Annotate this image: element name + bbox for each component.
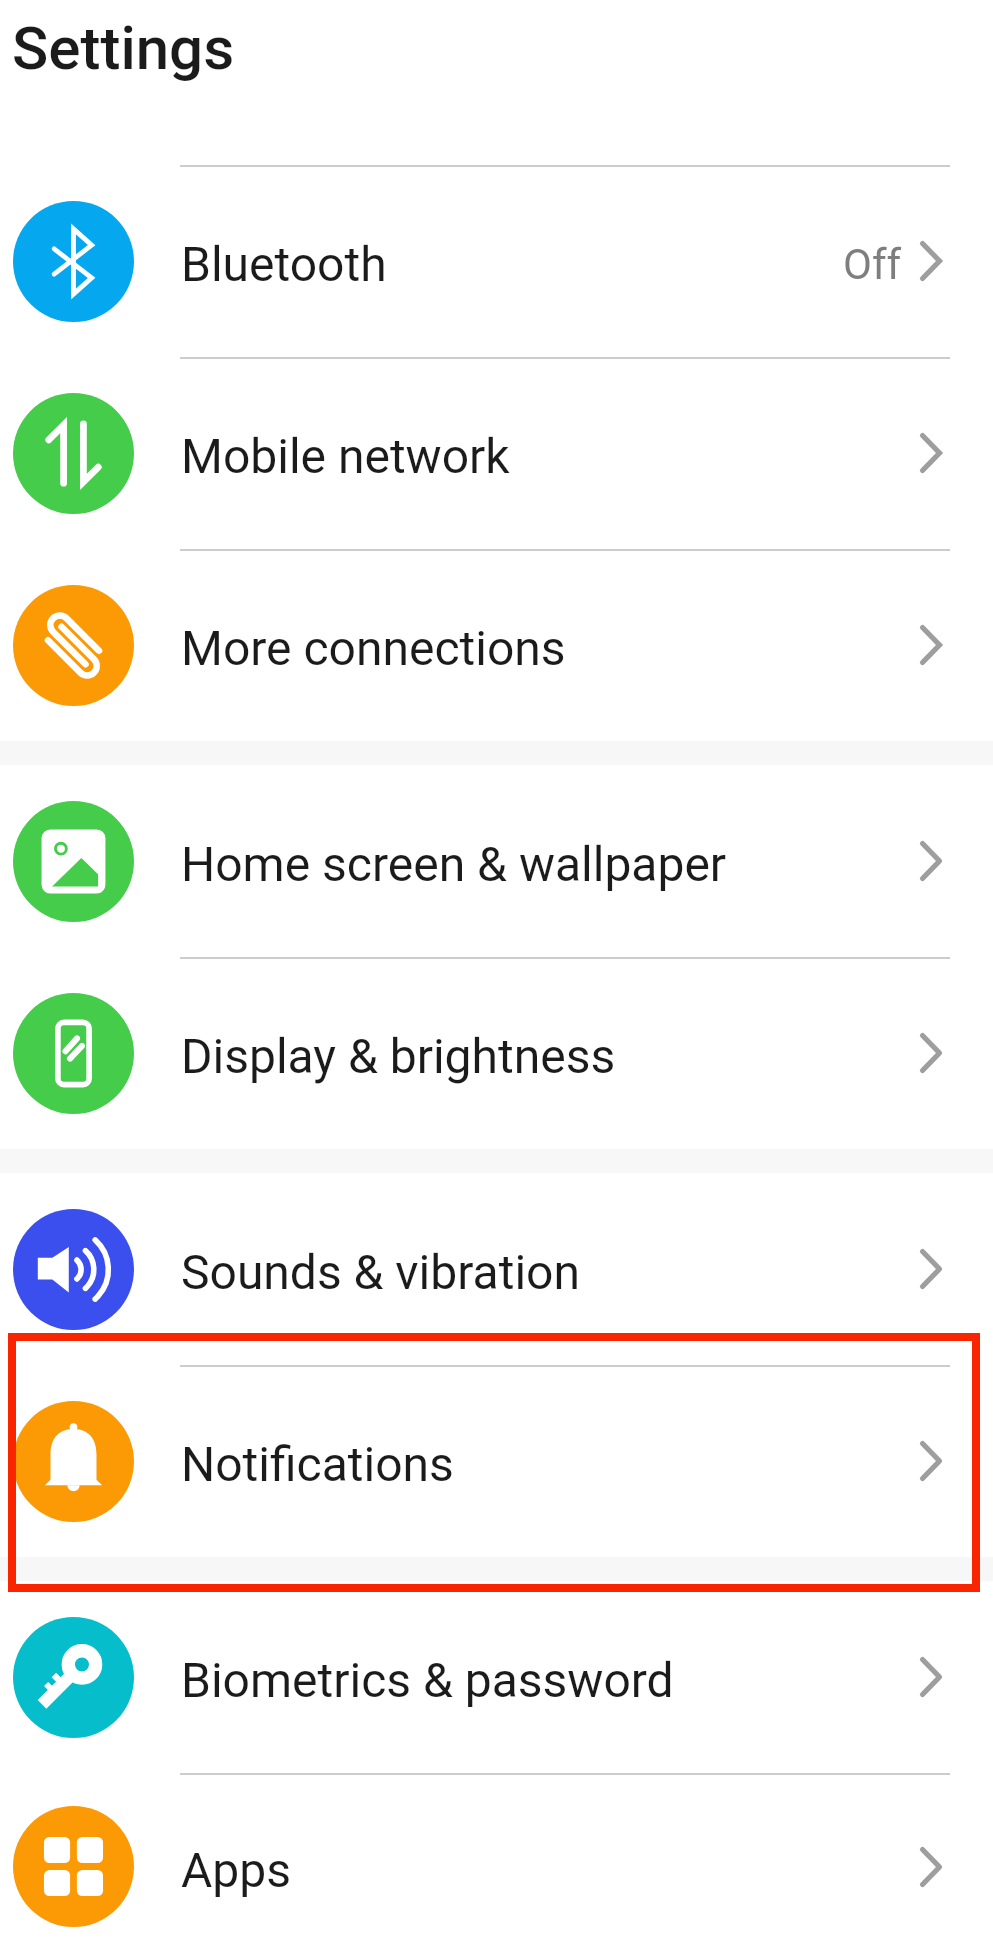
button[interactable]: Mobile network bbox=[0, 357, 993, 549]
staticText: Biometrics & password bbox=[181, 1652, 674, 1708]
staticText: Apps bbox=[181, 1842, 291, 1898]
staticText: Settings bbox=[12, 13, 235, 83]
button[interactable]: Home screen & wallpaper bbox=[0, 765, 993, 957]
other: Open Apps bbox=[920, 1847, 942, 1887]
staticText: Mobile network bbox=[181, 428, 510, 484]
other: Open Mobile network bbox=[920, 433, 942, 473]
staticText: Display & brightness bbox=[181, 1028, 616, 1084]
staticText: Notifications bbox=[181, 1436, 454, 1492]
button[interactable]: Notifications bbox=[0, 1365, 993, 1557]
button[interactable]: Biometrics & password bbox=[0, 1581, 993, 1773]
staticText: Bluetooth bbox=[181, 236, 387, 292]
staticText: Sounds & vibration bbox=[181, 1244, 580, 1300]
other: Open Display & brightness bbox=[920, 1033, 942, 1073]
staticText: Off bbox=[843, 240, 902, 289]
staticText: Home screen & wallpaper bbox=[181, 836, 727, 892]
button[interactable]: Apps bbox=[0, 1773, 993, 1960]
other: Open Bluetooth bbox=[920, 241, 942, 281]
button[interactable]: Bluetooth bbox=[0, 165, 993, 357]
other: Open Sounds & vibration bbox=[920, 1249, 942, 1289]
other: Open More connections bbox=[920, 625, 942, 665]
other: Open Biometrics & password bbox=[920, 1657, 942, 1697]
button[interactable]: Display & brightness bbox=[0, 957, 993, 1149]
button[interactable]: Sounds & vibration bbox=[0, 1173, 993, 1365]
button[interactable]: More connections bbox=[0, 549, 993, 741]
staticText: More connections bbox=[181, 620, 566, 676]
other: Open Notifications bbox=[920, 1441, 942, 1481]
other: Open Home screen & wallpaper bbox=[920, 841, 942, 881]
